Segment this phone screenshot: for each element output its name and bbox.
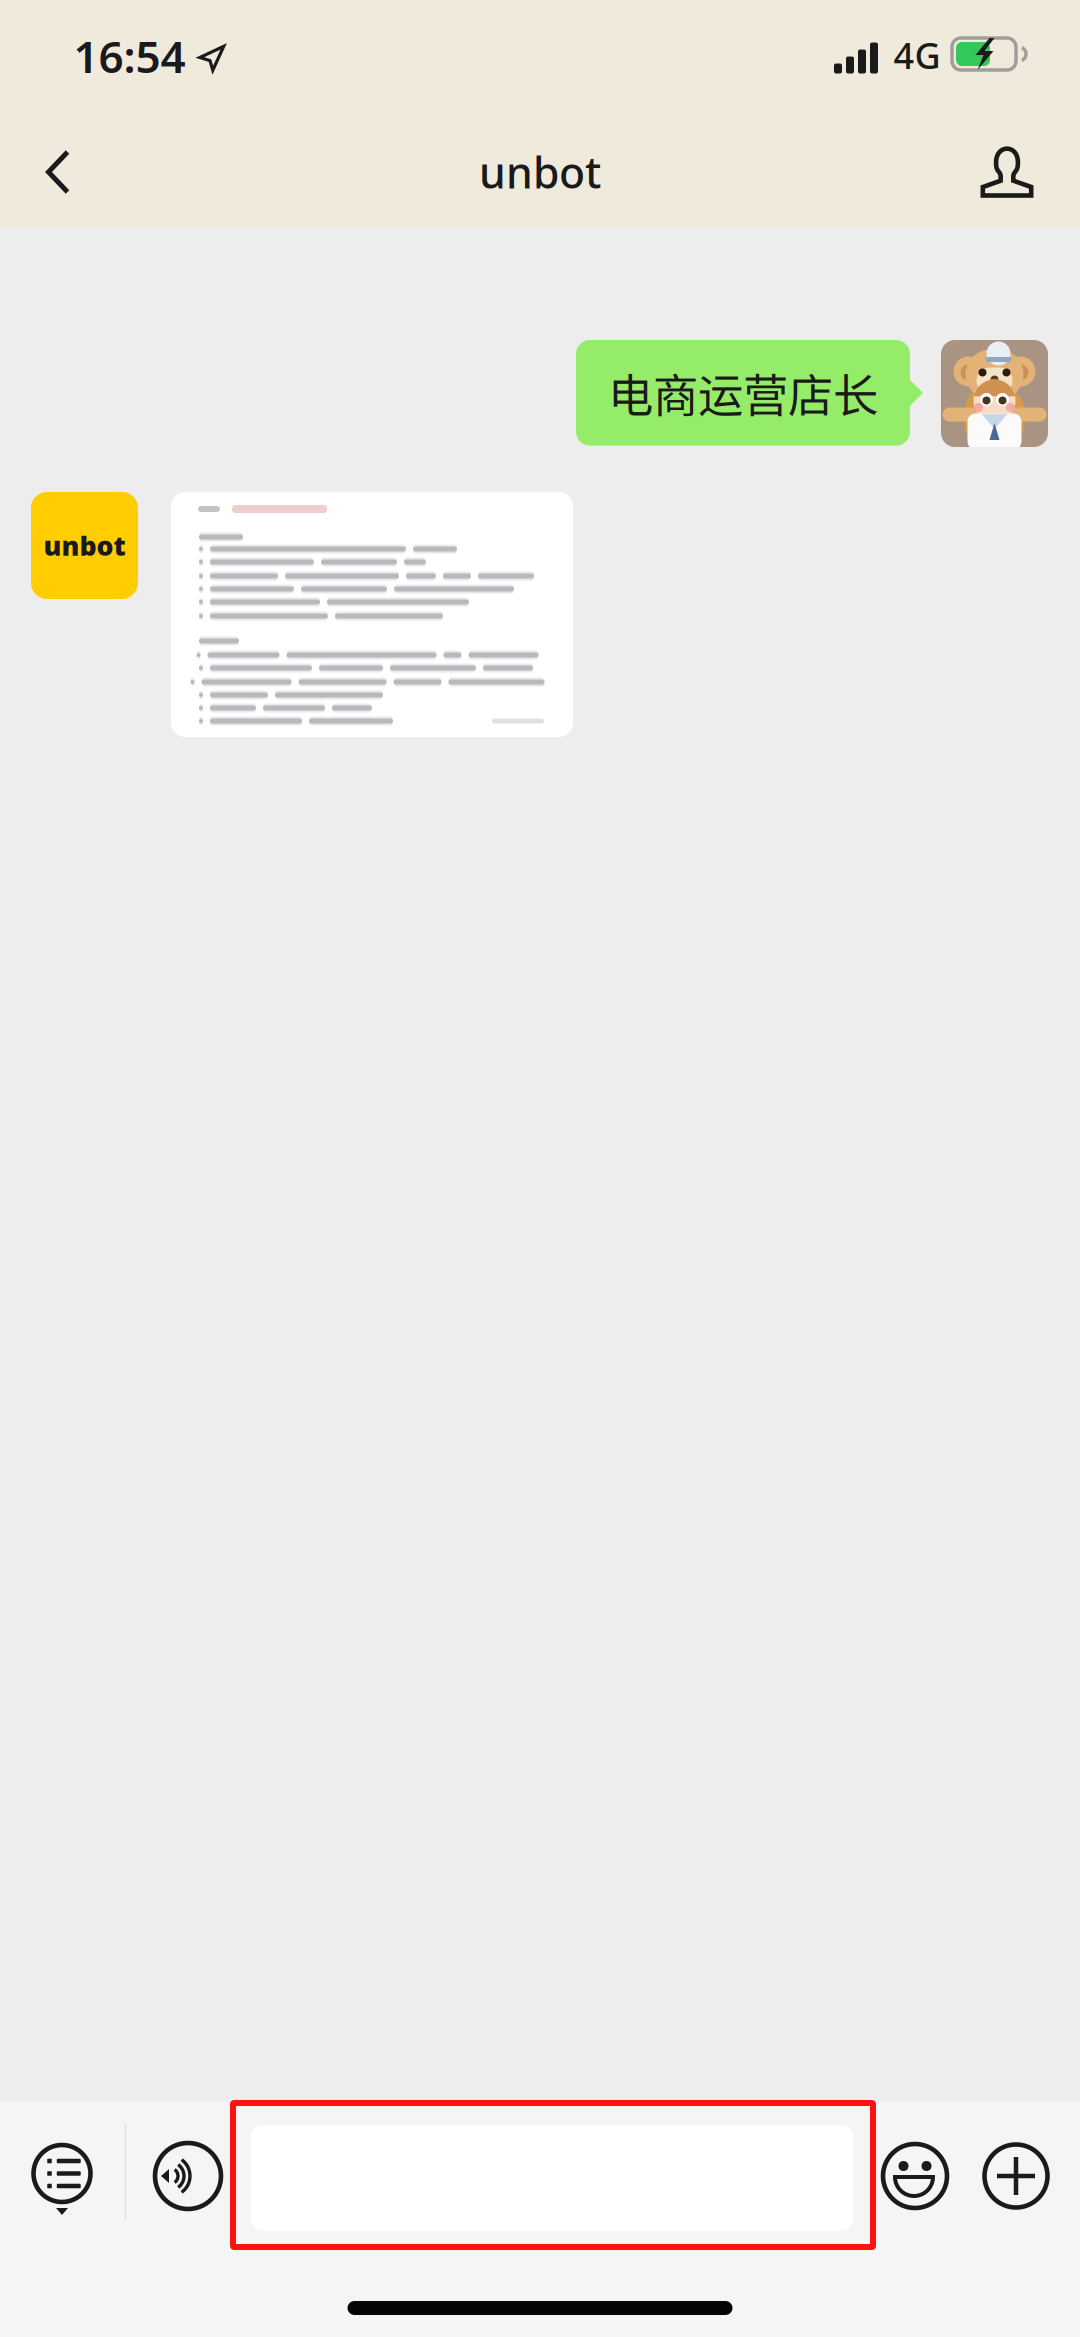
button[interactable]: Emoji [867,2120,963,2232]
staticText: 4G [893,31,940,79]
staticText: 16:54 [73,27,185,85]
button[interactable]: Back [3,111,113,233]
staticText: unbot [43,528,125,563]
button[interactable]: Menu [14,2124,110,2236]
button[interactable]: Message input [227,2096,879,2253]
staticText: unbot [479,144,601,200]
button[interactable]: Voice message [140,2120,236,2232]
button[interactable]: More [968,2120,1064,2232]
staticText: 电商运营店长 [608,360,878,426]
button[interactable]: Contact info [952,111,1062,233]
